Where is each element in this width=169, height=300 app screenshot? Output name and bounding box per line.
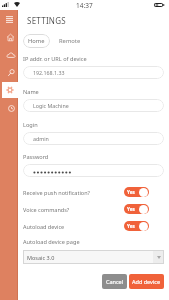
button[interactable]: Voice commands? xyxy=(23,203,149,215)
staticText: Remote xyxy=(59,37,81,45)
button[interactable]: 192.168.1.33 xyxy=(23,66,164,79)
staticText: Yes xyxy=(127,206,135,212)
staticText: Login xyxy=(23,121,38,129)
staticText: Home xyxy=(28,37,45,45)
staticText: Autoload device xyxy=(23,223,65,230)
button[interactable]: Home xyxy=(23,34,50,48)
button[interactable]: Logic Machine xyxy=(23,99,164,112)
button[interactable]: Home xyxy=(3,30,17,44)
staticText: Yes xyxy=(127,223,135,229)
button[interactable]: Menu xyxy=(0,10,18,28)
button[interactable] xyxy=(23,164,164,177)
staticText: Cancel xyxy=(106,278,124,285)
button[interactable]: Autoload device xyxy=(23,220,149,232)
staticText: Autoload device page xyxy=(23,238,80,246)
staticText: Receive push notification? xyxy=(23,189,90,196)
staticText: IP addr. or URL of device xyxy=(23,55,87,63)
staticText: 14:37 xyxy=(76,1,93,10)
button[interactable]: Add device xyxy=(129,274,164,289)
button[interactable]: Cancel xyxy=(102,274,127,289)
staticText: admin xyxy=(33,135,49,142)
button[interactable]: History xyxy=(4,101,18,115)
button[interactable]: Cloud xyxy=(3,48,18,61)
button[interactable]: Search xyxy=(4,65,18,79)
button[interactable]: Settings xyxy=(2,82,18,98)
staticText: SETTINGS xyxy=(27,15,66,26)
staticText: 192.168.1.33 xyxy=(33,69,65,76)
button[interactable]: Mosaic 3.0 xyxy=(23,250,164,264)
staticText: Yes xyxy=(127,189,135,195)
button[interactable]: Receive push notification? xyxy=(23,186,149,198)
staticText: Name xyxy=(23,88,39,96)
staticText: Mosaic 3.0 xyxy=(27,254,55,261)
staticText: Voice commands? xyxy=(23,206,70,213)
button[interactable]: admin xyxy=(23,132,164,145)
staticText: Add device xyxy=(132,278,161,285)
staticText: Password xyxy=(23,153,49,161)
staticText: Logic Machine xyxy=(33,102,69,109)
button[interactable]: Remote xyxy=(54,34,86,48)
